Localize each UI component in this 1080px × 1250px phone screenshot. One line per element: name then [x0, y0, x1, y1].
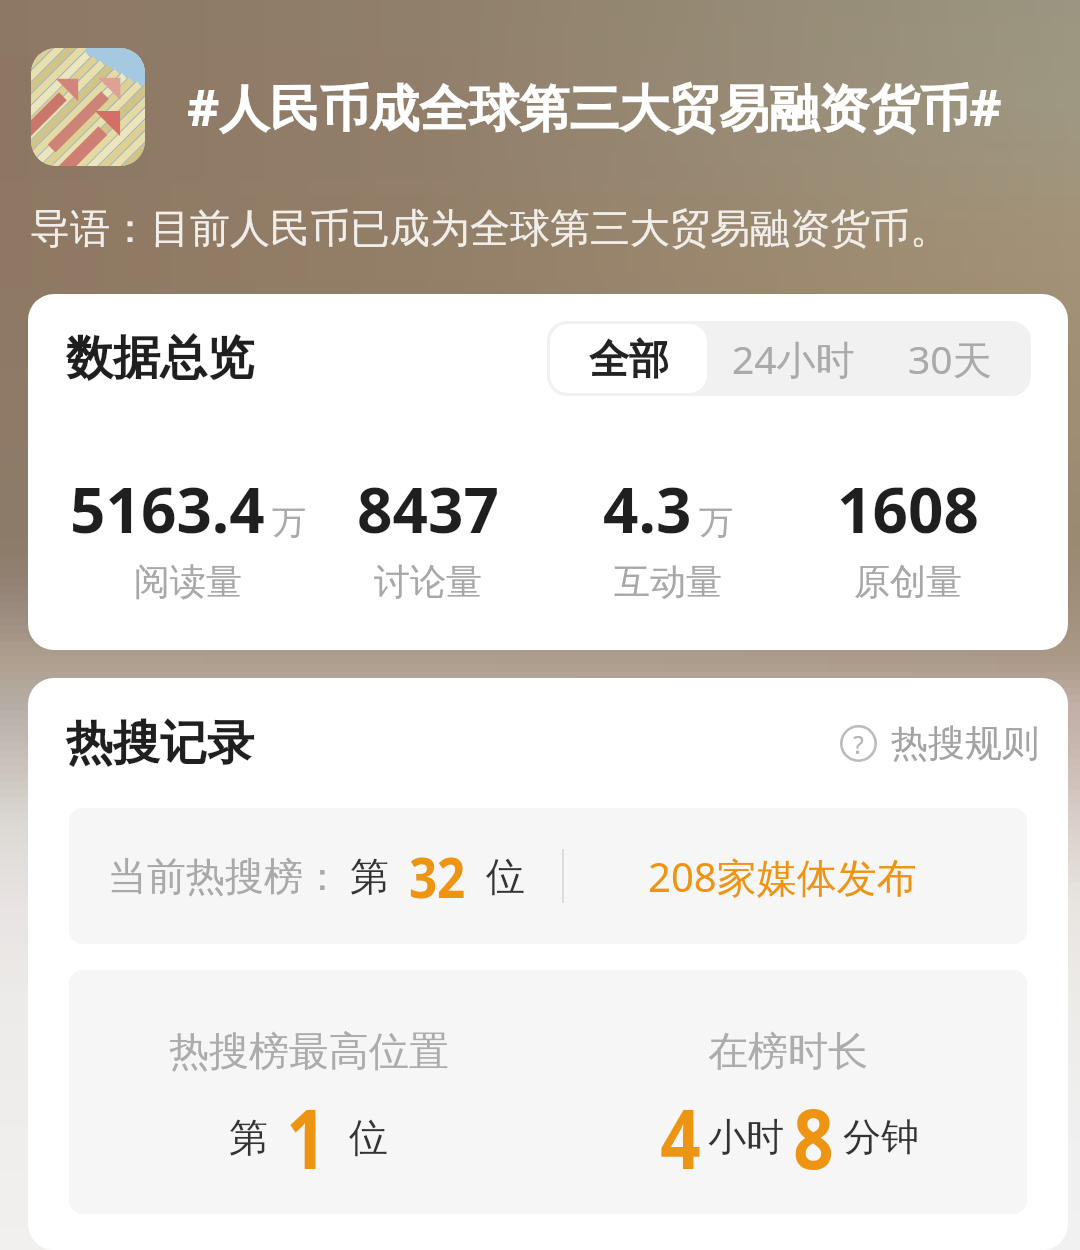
button[interactable]: 当前热搜榜： — [69, 808, 1027, 944]
staticText: 原创量 — [854, 559, 962, 604]
staticText: 全部 — [589, 334, 669, 384]
other: 热搜规则 — [840, 725, 877, 762]
staticText: 第 — [350, 852, 389, 901]
staticText: 导语：目前人民币已成为全球第三大贸易融资货币。 — [30, 203, 950, 253]
button[interactable]: 4.3 — [548, 467, 788, 604]
staticText: 热搜规则 — [891, 720, 1039, 767]
staticText: 位 — [349, 1113, 388, 1162]
button[interactable]: 热搜榜最高位置 — [69, 970, 548, 1214]
button[interactable]: 全部 — [550, 324, 707, 393]
button[interactable]: 1608 — [788, 467, 1028, 604]
staticText: 热搜榜最高位置 — [169, 1026, 449, 1076]
button[interactable]: 在榜时长 — [548, 970, 1027, 1214]
staticText: 数据总览 — [66, 329, 254, 388]
staticText: 8437 — [357, 467, 499, 551]
staticText: 阅读量 — [134, 559, 242, 604]
staticText: 1 — [286, 1081, 327, 1193]
staticText: 热搜记录 — [66, 714, 254, 773]
button[interactable]: 热搜规则 — [840, 720, 1039, 767]
staticText: 小时 — [708, 1113, 784, 1161]
staticText: 208家媒体发布 — [648, 849, 917, 904]
staticText: 4 — [660, 1081, 701, 1193]
button[interactable]: 24小时 — [710, 321, 883, 396]
staticText: 5163.4 — [70, 467, 265, 551]
staticText: 第 — [229, 1113, 268, 1162]
button[interactable]: Topic avatar — [31, 48, 145, 166]
staticText: 位 — [486, 852, 525, 901]
staticText: 万 — [699, 501, 733, 544]
staticText: 30天 — [908, 332, 992, 385]
staticText: 4.3 — [603, 467, 692, 551]
staticText: 讨论量 — [374, 559, 482, 604]
staticText: 分钟 — [843, 1113, 919, 1161]
staticText: 在榜时长 — [708, 1026, 868, 1076]
button[interactable]: 30天 — [883, 321, 1031, 396]
staticText: 万 — [272, 501, 306, 544]
button[interactable]: 8437 — [308, 467, 548, 604]
staticText: 互动量 — [614, 559, 722, 604]
staticText: 32 — [409, 838, 466, 914]
staticText: 当前热搜榜： — [108, 852, 342, 901]
staticText: ? — [853, 727, 864, 761]
button[interactable]: 5163.4 — [67, 467, 308, 604]
staticText: #人民币成全球第三大贸易融资货币# — [187, 73, 1002, 141]
staticText: 8 — [793, 1081, 834, 1193]
staticText: 1608 — [837, 467, 979, 551]
staticText: 24小时 — [732, 332, 855, 385]
